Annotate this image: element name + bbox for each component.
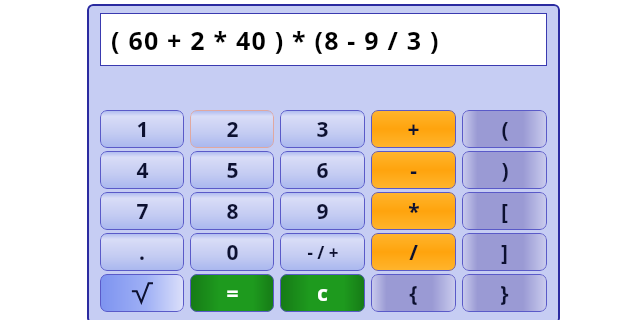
staticText: - / + xyxy=(307,241,339,264)
button[interactable]: / xyxy=(371,233,456,271)
staticText: * xyxy=(408,197,420,226)
staticText: + xyxy=(407,115,420,144)
other: Square root xyxy=(131,282,153,304)
button[interactable]: { xyxy=(371,274,456,312)
staticText: - xyxy=(410,156,417,185)
button[interactable]: 2 xyxy=(190,110,274,148)
button[interactable]: 0 xyxy=(190,233,274,271)
staticText: 4 xyxy=(136,156,149,185)
button[interactable]: ( xyxy=(462,110,547,148)
button[interactable]: 9 xyxy=(280,192,365,230)
staticText: ( xyxy=(501,115,509,144)
button[interactable]: + xyxy=(371,110,456,148)
button[interactable]: ) xyxy=(462,151,547,189)
button[interactable]: ( 60 + 2 * 40 ) * (8 - 9 / 3 ) xyxy=(100,13,547,66)
staticText: / xyxy=(409,238,418,267)
staticText: { xyxy=(409,279,418,308)
staticText: } xyxy=(500,279,509,308)
staticText: 2 xyxy=(226,115,239,144)
staticText: = xyxy=(226,279,239,308)
button[interactable]: 4 xyxy=(100,151,184,189)
staticText: 8 xyxy=(226,197,239,226)
staticText: ) xyxy=(501,156,509,185)
button[interactable]: [ xyxy=(462,192,547,230)
button[interactable]: * xyxy=(371,192,456,230)
staticText: [ xyxy=(501,197,508,226)
staticText: 7 xyxy=(136,197,149,226)
staticText: ] xyxy=(501,238,508,267)
staticText: 9 xyxy=(316,197,329,226)
staticText: 0 xyxy=(226,238,239,267)
staticText: c xyxy=(317,279,328,308)
button[interactable]: 6 xyxy=(280,151,365,189)
button[interactable]: 5 xyxy=(190,151,274,189)
staticText: ( 60 + 2 * 40 ) * (8 - 9 / 3 ) xyxy=(111,23,440,57)
staticText: 3 xyxy=(316,115,329,144)
button[interactable]: } xyxy=(462,274,547,312)
button[interactable]: 8 xyxy=(190,192,274,230)
button[interactable]: 3 xyxy=(280,110,365,148)
button[interactable]: - xyxy=(371,151,456,189)
button[interactable]: c xyxy=(280,274,365,312)
button[interactable]: 7 xyxy=(100,192,184,230)
button[interactable]: - / + xyxy=(280,233,365,271)
button[interactable]: ] xyxy=(462,233,547,271)
staticText: 6 xyxy=(316,156,329,185)
button[interactable]: Square root xyxy=(100,274,184,312)
staticText: . xyxy=(139,238,145,267)
staticText: 1 xyxy=(136,115,149,144)
button[interactable]: . xyxy=(100,233,184,271)
staticText: 5 xyxy=(226,156,239,185)
button[interactable]: 1 xyxy=(100,110,184,148)
button[interactable]: = xyxy=(190,274,274,312)
